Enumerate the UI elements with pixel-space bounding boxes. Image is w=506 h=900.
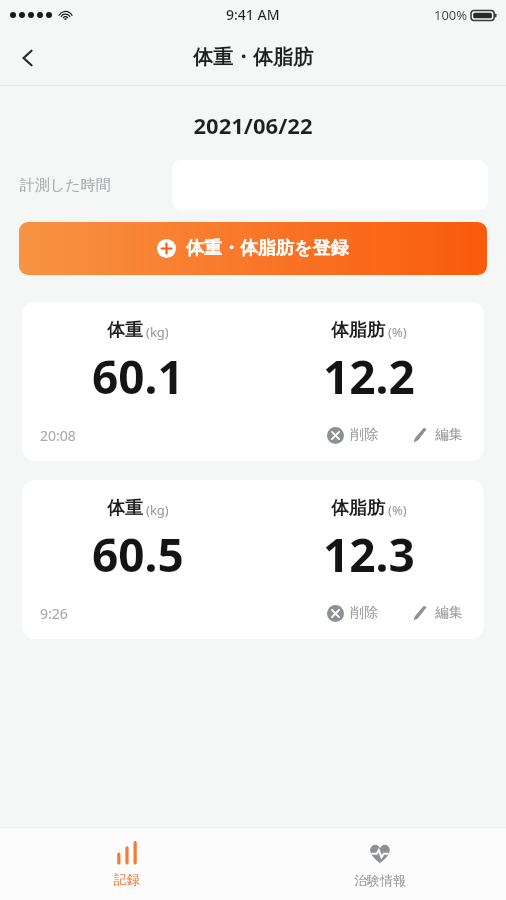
button[interactable]: 記録 bbox=[0, 828, 253, 900]
staticText: 100% bbox=[434, 6, 468, 24]
button[interactable]: 体重 bbox=[22, 480, 484, 639]
button[interactable]: 編集 bbox=[409, 422, 466, 448]
staticText: 削除 bbox=[350, 604, 378, 622]
button[interactable]: 削除 bbox=[324, 422, 381, 448]
staticText: 体重 bbox=[107, 319, 143, 342]
button[interactable]: 治験情報 bbox=[253, 828, 506, 900]
button[interactable]: Back bbox=[0, 29, 56, 86]
staticText: 12.3 bbox=[323, 523, 415, 586]
staticText: 2021/06/22 bbox=[0, 110, 506, 140]
staticText: 記録 bbox=[114, 871, 140, 887]
staticText: 9:26 bbox=[40, 604, 68, 623]
staticText: 計測した時間 bbox=[20, 176, 111, 195]
staticText: 体重・体脂肪を登録 bbox=[186, 237, 349, 260]
button[interactable]: 体重 bbox=[22, 302, 484, 461]
staticText: (%) bbox=[388, 501, 407, 519]
staticText: (kg) bbox=[146, 323, 169, 341]
staticText: 60.1 bbox=[92, 345, 184, 408]
staticText: 削除 bbox=[350, 426, 378, 444]
button[interactable]: 削除 bbox=[324, 600, 381, 626]
staticText: 60.5 bbox=[92, 523, 184, 586]
staticText: (%) bbox=[388, 323, 407, 341]
staticText: 編集 bbox=[435, 604, 463, 622]
staticText: 9:41 AM bbox=[226, 5, 280, 24]
staticText: 体脂肪 bbox=[331, 319, 385, 342]
staticText: 12.2 bbox=[323, 345, 415, 408]
staticText: 編集 bbox=[435, 426, 463, 444]
staticText: (kg) bbox=[146, 501, 169, 519]
button[interactable]: 体重・体脂肪を登録 bbox=[19, 222, 487, 275]
staticText: 体脂肪 bbox=[331, 497, 385, 520]
staticText: 体重 bbox=[107, 497, 143, 520]
staticText: 体重・体脂肪 bbox=[193, 45, 313, 70]
staticText: 治験情報 bbox=[354, 872, 406, 888]
button[interactable]: 編集 bbox=[409, 600, 466, 626]
staticText: 20:08 bbox=[40, 426, 76, 445]
